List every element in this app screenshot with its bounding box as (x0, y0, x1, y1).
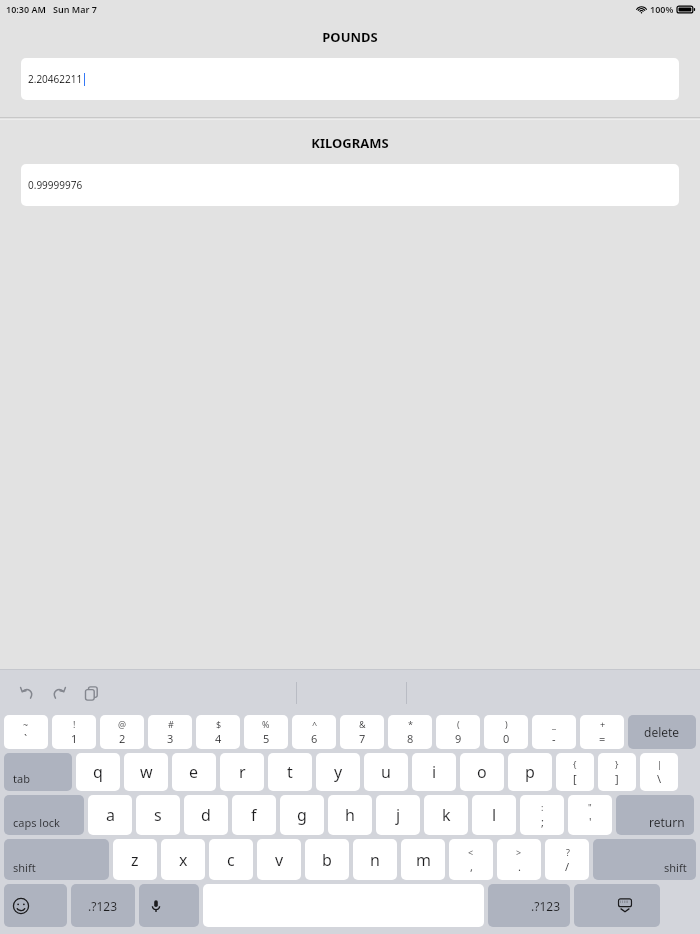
staticText: 6 (311, 731, 318, 746)
button[interactable]: 2.20462211 (21, 58, 679, 100)
button[interactable]: y (316, 753, 360, 791)
button[interactable]: o (460, 753, 504, 791)
staticText: " (588, 801, 592, 813)
button[interactable]: " (568, 795, 612, 835)
button[interactable]: q (76, 753, 120, 791)
staticText: m (416, 849, 431, 871)
button[interactable]: a (88, 795, 132, 835)
button[interactable]: tab (4, 753, 72, 791)
staticText: ] (615, 771, 619, 786)
button[interactable]: Redo (44, 678, 74, 708)
button[interactable]: ! (52, 715, 96, 749)
button[interactable]: ? (545, 839, 589, 880)
button[interactable]: x (161, 839, 205, 880)
button[interactable]: # (148, 715, 192, 749)
staticText: ` (24, 731, 28, 746)
staticText: 0 (503, 731, 510, 746)
button[interactable]: 0.99999976 (21, 164, 679, 206)
staticText: w (140, 761, 153, 783)
staticText: @ (118, 718, 127, 730)
button[interactable]: m (401, 839, 445, 880)
staticText: tab (13, 771, 30, 786)
button[interactable]: g (280, 795, 324, 835)
button[interactable]: > (497, 839, 541, 880)
button[interactable]: .?123 (488, 884, 570, 927)
button[interactable]: s (136, 795, 180, 835)
button[interactable]: k (424, 795, 468, 835)
button[interactable]: l (472, 795, 516, 835)
button[interactable]: t (268, 753, 312, 791)
button[interactable]: < (449, 839, 493, 880)
staticText: t (287, 761, 293, 783)
button[interactable]: @ (100, 715, 144, 749)
staticText: { (573, 758, 577, 770)
staticText: KILOGRAMS (311, 134, 389, 152)
button[interactable]: : (520, 795, 564, 835)
staticText: 10:30 AM (6, 3, 46, 15)
button[interactable]: { (556, 753, 594, 791)
button[interactable]: f (232, 795, 276, 835)
button[interactable]: p (508, 753, 552, 791)
button[interactable]: i (412, 753, 456, 791)
button[interactable]: + (580, 715, 624, 749)
button[interactable]: Paste (76, 678, 106, 708)
button[interactable]: e (172, 753, 216, 791)
staticText: v (275, 849, 284, 871)
button[interactable]: d (184, 795, 228, 835)
staticText: 5 (263, 731, 270, 746)
button[interactable]: h (328, 795, 372, 835)
staticText: / (565, 859, 570, 874)
staticText: k (442, 804, 451, 826)
button[interactable]: caps lock (4, 795, 84, 835)
button[interactable]: return (616, 795, 694, 835)
staticText: ) (505, 718, 508, 730)
staticText: 2 (119, 731, 126, 746)
staticText: f (251, 804, 257, 826)
staticText: * (408, 718, 413, 730)
button[interactable]: & (340, 715, 384, 749)
button[interactable]: b (305, 839, 349, 880)
button[interactable]: * (388, 715, 432, 749)
button[interactable]: } (598, 753, 636, 791)
button[interactable]: ~ (4, 715, 48, 749)
staticText: 100% (650, 3, 674, 15)
button[interactable]: Hide keyboard (574, 884, 660, 927)
button[interactable]: Emoji (4, 884, 67, 927)
button[interactable]: Dictation (139, 884, 199, 927)
staticText: q (93, 761, 103, 783)
staticText: , (470, 859, 473, 874)
staticText: $ (216, 718, 222, 730)
staticText: ^ (312, 718, 318, 730)
button[interactable]: $ (196, 715, 240, 749)
staticText: j (396, 804, 401, 826)
button[interactable]: | (640, 753, 678, 791)
button[interactable]: j (376, 795, 420, 835)
button[interactable]: shift (4, 839, 109, 880)
staticText: ? (566, 846, 570, 858)
button[interactable]: n (353, 839, 397, 880)
button[interactable]: z (113, 839, 157, 880)
staticText: 1 (71, 731, 78, 746)
staticText: e (189, 761, 199, 783)
button[interactable]: shift (593, 839, 696, 880)
button[interactable]: % (244, 715, 288, 749)
button[interactable]: u (364, 753, 408, 791)
button[interactable]: v (257, 839, 301, 880)
button[interactable]: r (220, 753, 264, 791)
staticText: caps lock (13, 815, 60, 830)
button[interactable]: .?123 (71, 884, 135, 927)
button[interactable]: w (124, 753, 168, 791)
button[interactable]: ) (484, 715, 528, 749)
staticText: _ (552, 718, 556, 730)
button[interactable]: Undo (12, 678, 42, 708)
staticText: b (322, 849, 332, 871)
staticText: # (168, 718, 174, 730)
button[interactable]: _ (532, 715, 576, 749)
staticText: .?123 (88, 898, 118, 914)
button[interactable]: c (209, 839, 253, 880)
button[interactable]: ^ (292, 715, 336, 749)
button[interactable]: ( (436, 715, 480, 749)
button[interactable]: delete (628, 715, 696, 749)
staticText: & (359, 718, 366, 730)
